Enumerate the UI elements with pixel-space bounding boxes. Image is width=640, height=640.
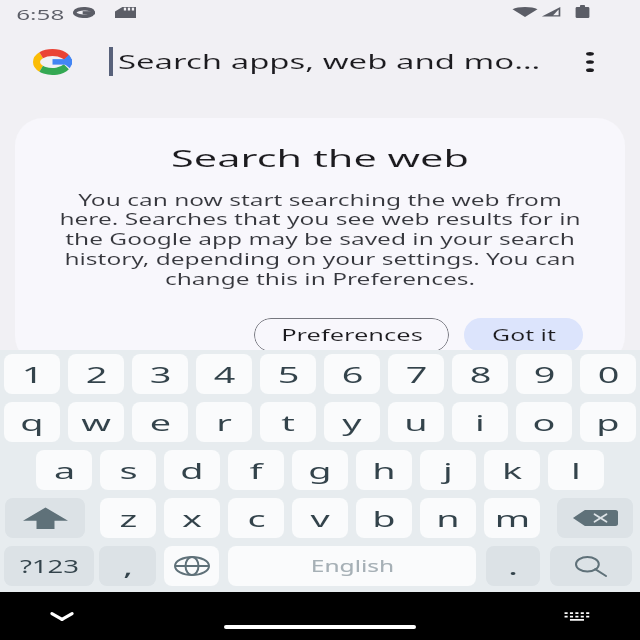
button[interactable]: u <box>388 402 444 442</box>
staticText: f <box>249 455 263 485</box>
button[interactable]: b <box>356 498 412 538</box>
button[interactable]: l <box>548 450 604 490</box>
button[interactable]: a <box>36 450 92 490</box>
button[interactable]: 9 <box>516 354 572 394</box>
button[interactable]: Search <box>550 546 632 586</box>
button[interactable]: English <box>228 546 476 586</box>
button[interactable]: . <box>486 546 540 586</box>
button[interactable]: Hide keyboard <box>38 592 86 640</box>
staticText: t <box>281 407 295 437</box>
button[interactable]: h <box>356 450 412 490</box>
button[interactable]: Google <box>27 44 77 80</box>
button[interactable]: , <box>99 546 156 586</box>
button[interactable]: v <box>292 498 348 538</box>
button[interactable]: 7 <box>388 354 444 394</box>
button[interactable]: 1 <box>4 354 60 394</box>
staticText: ?123 <box>20 554 79 579</box>
staticText: Got it <box>491 324 557 346</box>
button[interactable]: f <box>228 450 284 490</box>
button[interactable]: 6 <box>324 354 380 394</box>
staticText: a <box>53 455 76 485</box>
staticText: 8 <box>469 359 492 389</box>
staticText: h <box>372 455 396 485</box>
button[interactable]: y <box>324 402 380 442</box>
button[interactable]: Shift <box>5 498 85 538</box>
staticText: , <box>123 551 133 581</box>
staticText: x <box>182 503 202 533</box>
staticText: 4 <box>213 359 236 389</box>
staticText: . <box>508 551 518 581</box>
staticText: p <box>596 407 620 437</box>
staticText: Search the web <box>15 142 625 173</box>
button[interactable]: Preferences <box>254 318 449 352</box>
staticText: Search apps, web and mo… <box>118 48 541 75</box>
staticText: 6:58 <box>16 5 64 24</box>
button[interactable]: e <box>132 402 188 442</box>
button[interactable]: k <box>484 450 540 490</box>
staticText: 3 <box>149 359 172 389</box>
button[interactable]: t <box>260 402 316 442</box>
staticText: b <box>372 503 396 533</box>
staticText: d <box>180 455 204 485</box>
staticText: o <box>532 407 556 437</box>
button[interactable]: x <box>164 498 220 538</box>
button[interactable]: o <box>516 402 572 442</box>
button[interactable]: 8 <box>452 354 508 394</box>
staticText: Preferences <box>280 324 424 346</box>
button[interactable]: ?123 <box>4 546 94 586</box>
staticText: g <box>308 455 332 485</box>
button[interactable]: p <box>580 402 636 442</box>
staticText: l <box>571 455 581 485</box>
staticText: i <box>475 407 485 437</box>
button[interactable]: 4 <box>196 354 252 394</box>
staticText: m <box>494 503 530 533</box>
button[interactable]: g <box>292 450 348 490</box>
staticText: r <box>215 407 233 437</box>
staticText: y <box>342 407 362 437</box>
staticText: e <box>149 407 172 437</box>
staticText: k <box>502 455 522 485</box>
button[interactable]: 0 <box>580 354 636 394</box>
staticText: 6 <box>341 359 364 389</box>
staticText: c <box>247 503 266 533</box>
staticText: 2 <box>85 359 108 389</box>
button[interactable]: q <box>4 402 60 442</box>
staticText: 7 <box>405 359 428 389</box>
staticText: 1 <box>21 359 44 389</box>
staticText: j <box>443 455 453 485</box>
button[interactable]: r <box>196 402 252 442</box>
button[interactable]: More options <box>566 38 614 86</box>
staticText: q <box>20 407 44 437</box>
button[interactable]: i <box>452 402 508 442</box>
staticText: u <box>404 407 428 437</box>
button[interactable]: d <box>164 450 220 490</box>
button[interactable]: s <box>100 450 156 490</box>
staticText: n <box>436 503 460 533</box>
button[interactable]: Got it <box>464 318 583 352</box>
button[interactable]: Backspace <box>557 498 633 538</box>
button[interactable]: Switch keyboard <box>553 592 601 640</box>
staticText: s <box>119 455 138 485</box>
button[interactable]: n <box>420 498 476 538</box>
staticText: 5 <box>277 359 300 389</box>
button[interactable]: z <box>100 498 156 538</box>
staticText: w <box>80 407 111 437</box>
staticText: v <box>310 503 330 533</box>
button[interactable]: c <box>228 498 284 538</box>
staticText: 0 <box>597 359 620 389</box>
button[interactable]: 3 <box>132 354 188 394</box>
staticText: z <box>119 503 138 533</box>
staticText: 9 <box>533 359 556 389</box>
button[interactable]: m <box>484 498 540 538</box>
staticText: English <box>310 555 395 577</box>
button[interactable]: 2 <box>68 354 124 394</box>
button[interactable]: 5 <box>260 354 316 394</box>
button[interactable]: w <box>68 402 124 442</box>
button[interactable]: Change language <box>164 546 219 586</box>
staticText: You can now start searching the web from… <box>15 189 625 290</box>
button[interactable]: j <box>420 450 476 490</box>
